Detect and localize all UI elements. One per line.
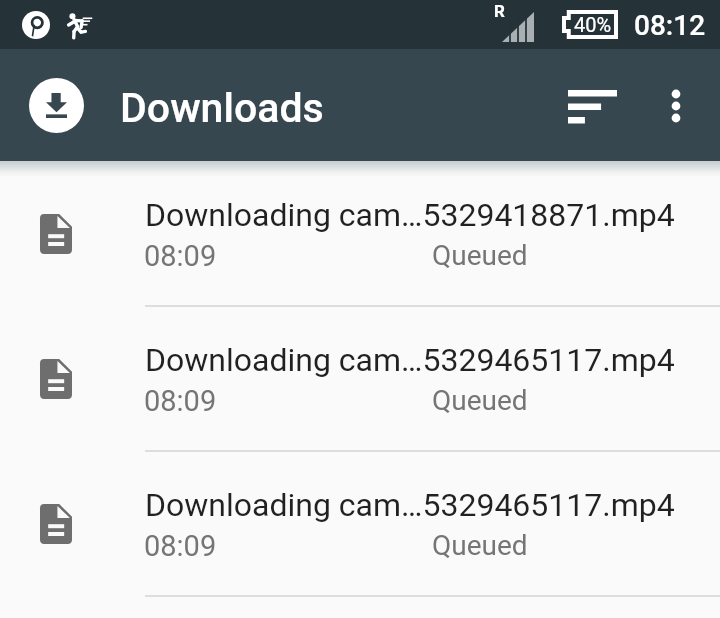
staticText: 08:09 — [144, 384, 217, 418]
staticText: Downloading cam…5329465117.mp4 — [145, 486, 675, 524]
staticText: Downloading cam…5329465117.mp4 — [145, 341, 675, 379]
button[interactable]: More options — [640, 49, 720, 161]
staticText: 40% — [574, 13, 612, 36]
staticText: 08:09 — [144, 239, 217, 273]
button[interactable]: Downloads — [29, 78, 84, 133]
staticText: 08:12 — [634, 9, 706, 42]
staticText: Queued — [432, 384, 528, 417]
staticText: Queued — [432, 529, 528, 562]
staticText: Queued — [432, 239, 528, 272]
button[interactable]: Downloading cam…5329465117.mp4 — [0, 307, 720, 450]
staticText: Downloading cam…5329418871.mp4 — [145, 196, 675, 234]
staticText: Downloads — [120, 84, 324, 132]
button[interactable]: Sort — [544, 49, 640, 161]
staticText: 08:09 — [144, 529, 217, 563]
staticText: R — [494, 1, 505, 21]
button[interactable]: Downloading cam…5329418871.mp4 — [0, 162, 720, 305]
button[interactable]: Downloading cam…5329465117.mp4 — [0, 452, 720, 595]
